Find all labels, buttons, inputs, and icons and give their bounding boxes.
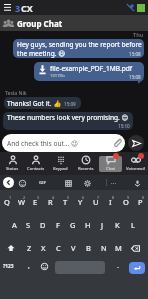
staticText: Hey guys, sending you the report before … xyxy=(17,40,142,58)
button[interactable]: J xyxy=(95,217,110,233)
button[interactable]: Back xyxy=(3,177,14,188)
staticText: Voicemail xyxy=(126,166,145,172)
button[interactable]: F xyxy=(50,217,65,233)
button[interactable]: 6 xyxy=(73,194,88,210)
button[interactable]: A xyxy=(7,217,21,233)
staticText: F xyxy=(56,220,60,230)
staticText: ?123 xyxy=(3,263,14,270)
button[interactable]: Enter xyxy=(129,262,145,274)
button[interactable]: Z xyxy=(22,240,36,256)
button[interactable]: Recents xyxy=(73,152,98,175)
staticText: 0 xyxy=(142,195,145,200)
staticText: K xyxy=(115,220,120,230)
staticText: Y xyxy=(78,197,83,207)
button[interactable]: 1 xyxy=(0,194,14,210)
staticText: A xyxy=(12,220,17,230)
staticText: . xyxy=(117,261,119,271)
staticText: 15:09 xyxy=(64,101,76,107)
staticText: 2 xyxy=(23,195,26,200)
staticText: file-example_PDF_1MB.pdf xyxy=(50,64,133,73)
button[interactable]: K xyxy=(110,217,125,233)
staticText: And check this out... 😉 xyxy=(7,139,78,148)
staticText: N xyxy=(101,243,107,253)
button[interactable]: X xyxy=(36,240,51,256)
button[interactable]: Contacts xyxy=(24,152,48,175)
button[interactable]: 4 xyxy=(43,194,58,210)
button[interactable]: H xyxy=(80,217,95,233)
button[interactable]: L xyxy=(125,217,140,233)
staticText: 1 xyxy=(9,195,12,200)
button[interactable]: Comma xyxy=(23,255,35,277)
button[interactable]: 8 xyxy=(103,194,118,210)
button[interactable]: Backspace xyxy=(126,240,144,256)
button[interactable]: Shift xyxy=(1,240,20,256)
button[interactable]: Keyboard tool xyxy=(81,177,93,189)
staticText: B xyxy=(86,243,91,253)
staticText: Thu xyxy=(133,31,144,38)
button[interactable]: Send xyxy=(128,135,144,151)
button[interactable]: Do not disturb xyxy=(124,1,137,14)
button[interactable]: Space xyxy=(55,261,105,274)
staticText: These numbers look very promising. 😊 xyxy=(7,113,129,122)
button[interactable]: Keyboard tool xyxy=(62,177,74,189)
staticText: C xyxy=(56,243,61,253)
button[interactable]: Chat xyxy=(98,152,123,175)
staticText: Contacts xyxy=(27,166,45,172)
button[interactable]: 5 xyxy=(58,194,73,210)
staticText: 3 xyxy=(15,2,21,14)
button[interactable]: G xyxy=(65,217,80,233)
staticText: W xyxy=(18,197,25,207)
button[interactable]: These numbers look very promising. 😊 xyxy=(3,112,133,130)
staticText: Z xyxy=(27,243,32,253)
button[interactable]: 2 xyxy=(14,194,28,210)
button[interactable]: file-example_PDF_1MB.pdf xyxy=(34,62,144,81)
staticText: Thanks! Got it. 👍 xyxy=(7,99,62,108)
staticText: Status xyxy=(6,166,19,172)
button[interactable]: B xyxy=(81,240,96,256)
button[interactable]: 7 xyxy=(88,194,103,210)
button[interactable]: ?123 xyxy=(0,255,17,277)
button[interactable]: 0 xyxy=(133,194,148,210)
staticText: V xyxy=(71,243,76,253)
staticText: 4 xyxy=(52,195,55,200)
staticText: Chat xyxy=(106,166,116,172)
staticText: , xyxy=(28,261,30,271)
staticText: E xyxy=(33,197,38,207)
button[interactable]: Group Chat xyxy=(0,15,148,31)
button[interactable]: Keyboard tool xyxy=(16,177,28,189)
staticText: Tesla Nik xyxy=(5,89,27,96)
staticText: 3 xyxy=(37,195,40,200)
button[interactable]: Voicemail xyxy=(123,152,148,175)
button[interactable]: And check this out... 😉 xyxy=(2,134,125,152)
button[interactable]: Period xyxy=(112,255,124,277)
button[interactable]: Thanks! Got it. 👍 xyxy=(4,97,81,109)
staticText: T xyxy=(63,197,68,207)
button[interactable]: V xyxy=(66,240,81,256)
button[interactable]: Keyboard tool xyxy=(36,177,48,189)
staticText: X xyxy=(41,243,46,253)
button[interactable]: Keyboard tool xyxy=(131,177,143,189)
staticText: 5 xyxy=(67,195,70,200)
button[interactable]: Status xyxy=(0,152,24,175)
staticText: M xyxy=(115,243,122,253)
button[interactable]: Menu xyxy=(0,0,15,15)
staticText: GIF xyxy=(39,180,46,186)
button[interactable]: C xyxy=(51,240,66,256)
button[interactable]: Emoji xyxy=(38,255,50,277)
button[interactable]: Keypad xyxy=(48,152,73,175)
button[interactable]: D xyxy=(35,217,50,233)
staticText: Keypad xyxy=(53,166,68,172)
staticText: 15:10 xyxy=(118,123,130,129)
button[interactable]: 9 xyxy=(118,194,133,210)
staticText: R xyxy=(48,197,53,207)
button[interactable]: 3 xyxy=(28,194,43,210)
button[interactable]: Keyboard tool xyxy=(107,177,119,189)
button[interactable]: M xyxy=(111,240,126,256)
staticText: P xyxy=(138,197,143,207)
staticText: 15:08 xyxy=(129,51,141,57)
button[interactable]: S xyxy=(21,217,35,233)
button[interactable]: N xyxy=(96,240,111,256)
button[interactable]: Hey guys, sending you the report before … xyxy=(13,39,144,58)
staticText: Recents xyxy=(78,166,94,172)
